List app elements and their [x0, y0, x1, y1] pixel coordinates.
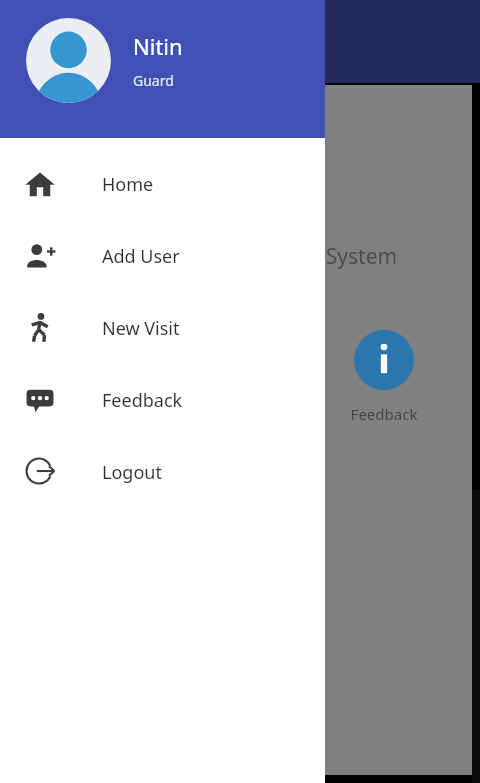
- staticText: Nitin: [133, 31, 183, 61]
- button[interactable]: Feedback: [0, 364, 325, 436]
- staticText: Guard: [133, 71, 174, 90]
- staticText: Visitor Management System: [120, 242, 398, 271]
- button[interactable]: Home: [0, 148, 325, 220]
- staticText: Feedback: [324, 404, 444, 424]
- staticText: Add User: [102, 244, 180, 269]
- button[interactable]: Add User: [0, 220, 325, 292]
- staticText: New Visit: [102, 316, 180, 341]
- staticText: Feedback: [102, 388, 183, 413]
- staticText: Home: [102, 172, 154, 197]
- staticText: Logout: [102, 460, 162, 485]
- button[interactable]: New Visit: [0, 292, 325, 364]
- button[interactable]: Logout: [0, 436, 325, 508]
- button[interactable]: Feedback: [324, 330, 444, 424]
